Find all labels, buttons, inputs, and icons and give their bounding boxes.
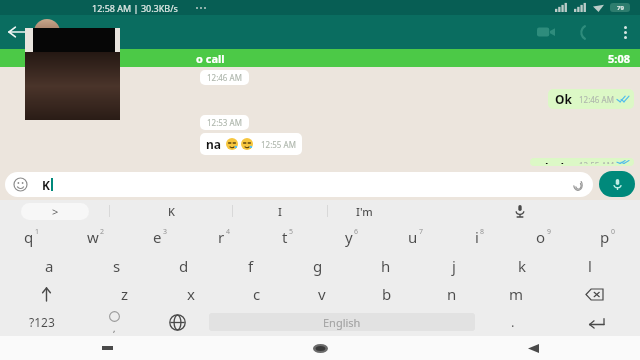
staticText: I'm xyxy=(356,204,373,219)
staticText: q xyxy=(24,227,34,247)
button[interactable]: r xyxy=(192,222,256,252)
staticText: > xyxy=(52,204,59,219)
staticText: s xyxy=(113,256,121,276)
staticText: z xyxy=(121,284,129,304)
staticText: d xyxy=(179,256,189,276)
button[interactable]: Profile photo xyxy=(34,19,60,45)
staticText: ?123 xyxy=(29,314,55,330)
staticText: u xyxy=(408,227,418,247)
staticText: b xyxy=(382,284,392,304)
staticText: g xyxy=(313,256,323,276)
staticText: v xyxy=(318,284,326,304)
button[interactable]: n xyxy=(419,280,484,308)
button[interactable]: English xyxy=(209,313,475,331)
button[interactable]: Change language xyxy=(146,308,209,336)
staticText: 9 xyxy=(547,227,552,237)
staticText: Khulo xyxy=(537,160,572,164)
button[interactable]: s xyxy=(83,252,150,280)
button[interactable]: x xyxy=(158,280,224,308)
button[interactable]: v xyxy=(289,280,354,308)
button[interactable]: o xyxy=(512,222,576,252)
staticText: w xyxy=(87,227,99,247)
staticText: , xyxy=(113,322,116,334)
button[interactable]: ?123 xyxy=(0,308,83,336)
staticText: 12:53 AM xyxy=(207,117,242,128)
staticText: 79 xyxy=(617,4,624,12)
button[interactable]: Khulo xyxy=(537,160,629,164)
button[interactable]: Ok xyxy=(555,91,629,107)
button[interactable]: j xyxy=(420,252,488,280)
button[interactable]: > xyxy=(0,200,109,222)
button[interactable]: I xyxy=(233,200,327,222)
staticText: 12:55 AM xyxy=(261,139,296,150)
button[interactable]: m xyxy=(484,280,549,308)
button[interactable]: t xyxy=(256,222,320,252)
button[interactable]: a xyxy=(16,252,83,280)
button[interactable]: u xyxy=(384,222,448,252)
button[interactable]: More options xyxy=(610,15,640,49)
staticText: n xyxy=(447,284,457,304)
staticText: na xyxy=(206,136,221,152)
staticText: t xyxy=(282,227,288,247)
button[interactable]: 12:46 AM xyxy=(207,72,242,83)
button[interactable]: Video call xyxy=(526,15,566,49)
staticText: h xyxy=(381,256,391,276)
button[interactable]: na xyxy=(206,136,296,152)
button[interactable]: 12:53 AM xyxy=(207,117,242,128)
button[interactable]: K xyxy=(13,172,585,197)
button[interactable]: Voice message xyxy=(599,171,635,197)
staticText: e xyxy=(153,227,162,247)
staticText: a xyxy=(45,256,54,276)
staticText: l xyxy=(588,256,592,276)
button[interactable]: g xyxy=(284,252,352,280)
staticText: 6 xyxy=(354,227,359,237)
button[interactable]: K xyxy=(110,200,232,222)
staticText: c xyxy=(253,284,261,304)
button[interactable]: Enter xyxy=(551,308,640,336)
button[interactable]: Voice input xyxy=(400,200,640,222)
button[interactable]: c xyxy=(224,280,289,308)
button[interactable]: k xyxy=(488,252,556,280)
staticText: x xyxy=(187,284,195,304)
button[interactable]: o call xyxy=(0,49,640,67)
button[interactable]: q xyxy=(0,222,64,252)
staticText: TAHIA xyxy=(70,22,114,42)
button[interactable]: I'm xyxy=(328,200,400,222)
button[interactable]: e xyxy=(128,222,192,252)
button[interactable]: Shift xyxy=(0,280,92,308)
button[interactable]: l xyxy=(556,252,624,280)
staticText: I xyxy=(278,204,282,219)
staticText: i xyxy=(475,227,479,247)
button[interactable]: d xyxy=(150,252,217,280)
button[interactable]: Voice call xyxy=(566,15,610,49)
button[interactable]: w xyxy=(64,222,128,252)
button[interactable]: p xyxy=(576,222,640,252)
button[interactable]: Back xyxy=(0,15,34,49)
button[interactable]: . xyxy=(475,308,551,336)
staticText: f xyxy=(248,256,254,276)
button[interactable]: Video call preview xyxy=(25,28,120,120)
staticText: 4 xyxy=(226,227,231,237)
staticText: 7 xyxy=(419,227,424,237)
button[interactable]: y xyxy=(320,222,384,252)
button[interactable]: h xyxy=(352,252,420,280)
button[interactable]: Recents xyxy=(0,336,214,360)
button[interactable]: Backspace xyxy=(549,280,640,308)
button[interactable]: b xyxy=(354,280,419,308)
staticText: 5:08 xyxy=(608,51,630,66)
button[interactable]: z xyxy=(92,280,158,308)
button[interactable]: Emoji xyxy=(83,308,146,336)
staticText: . xyxy=(511,313,515,331)
button[interactable]: Home xyxy=(214,336,427,360)
button[interactable]: i xyxy=(448,222,512,252)
staticText: 5 xyxy=(289,227,294,237)
button[interactable]: f xyxy=(217,252,284,280)
staticText: 12:55 AM xyxy=(579,160,614,164)
button[interactable]: TAHIA xyxy=(70,15,526,49)
staticText: o xyxy=(536,227,546,247)
staticText: 2 xyxy=(100,227,105,237)
staticText: English xyxy=(323,315,361,330)
button[interactable]: Back xyxy=(427,336,640,360)
staticText: y xyxy=(345,227,353,247)
staticText: k xyxy=(518,256,527,276)
